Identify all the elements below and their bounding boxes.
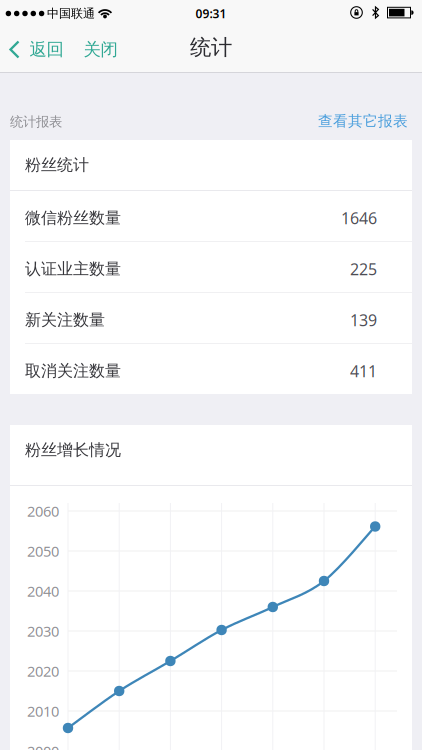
staticText: 关闭 (83, 39, 117, 60)
staticText: 取消关注数量 (25, 361, 121, 381)
staticText: 2010 (27, 701, 59, 721)
staticText: 粉丝统计 (25, 155, 89, 175)
staticText: 粉丝增长情况 (25, 440, 121, 460)
staticText: 09:31 (195, 5, 226, 21)
button[interactable]: 查看其它报表 (318, 112, 408, 130)
button[interactable]: 返回 (0, 29, 63, 69)
staticText: 2060 (27, 501, 59, 521)
staticText: 139 (350, 309, 377, 331)
staticText: 中国联通 (47, 6, 95, 21)
staticText: 认证业主数量 (25, 259, 121, 279)
staticText: 返回 (29, 39, 63, 60)
staticText: 2030 (27, 621, 59, 641)
staticText: 2050 (27, 541, 59, 561)
button[interactable]: 关闭 (63, 39, 117, 60)
staticText: 统计报表 (10, 114, 62, 130)
staticText: 新关注数量 (25, 310, 105, 330)
staticText: 微信粉丝数量 (25, 208, 121, 228)
staticText: 统计 (190, 34, 232, 61)
staticText: 411 (350, 360, 377, 382)
staticText: 2020 (27, 661, 59, 681)
staticText: 2000 (27, 741, 59, 750)
staticText: 1646 (341, 207, 377, 229)
staticText: 查看其它报表 (318, 112, 408, 130)
staticText: 2040 (27, 581, 59, 601)
staticText: 225 (350, 258, 377, 280)
